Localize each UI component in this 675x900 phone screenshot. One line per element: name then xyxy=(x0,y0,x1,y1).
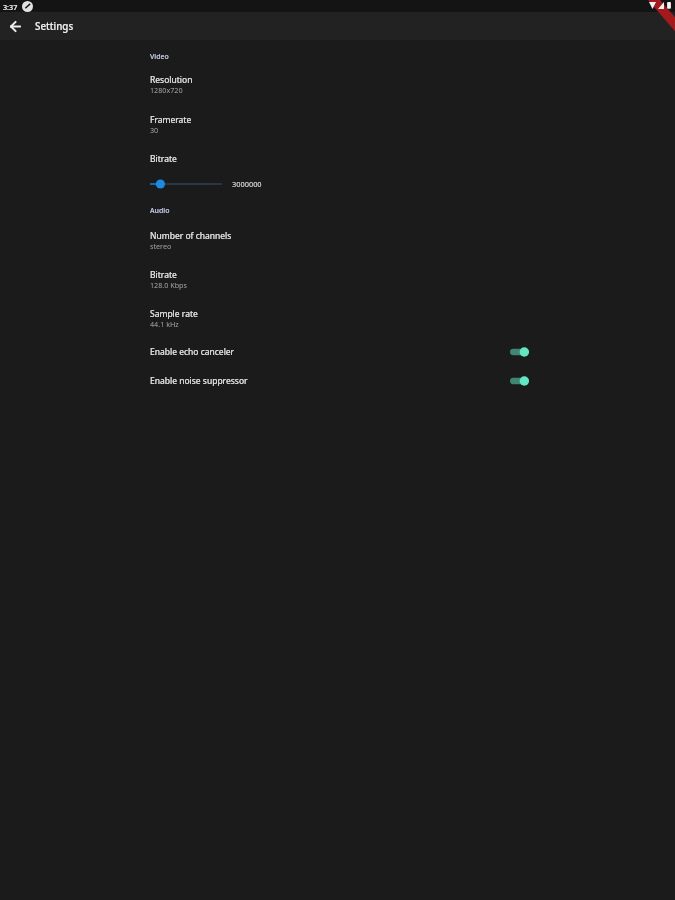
staticText: 128.0 Kbps xyxy=(150,280,187,290)
button[interactable]: Bitrate xyxy=(144,150,675,168)
staticText: 3:37 xyxy=(3,2,18,12)
button[interactable]: Enable noise suppressor xyxy=(0,370,675,392)
staticText: Audio xyxy=(150,206,170,216)
button[interactable]: Sample rate xyxy=(144,305,675,333)
staticText: 30 xyxy=(150,125,159,135)
staticText: Number of channels xyxy=(150,230,232,242)
button[interactable]: Resolution xyxy=(144,71,675,99)
button[interactable]: Enable echo canceler xyxy=(0,341,675,363)
staticText: Enable noise suppressor xyxy=(150,375,248,387)
staticText: Sample rate xyxy=(150,308,198,320)
button[interactable]: Framerate xyxy=(144,111,675,139)
staticText: Bitrate xyxy=(150,153,177,165)
staticText: Bitrate xyxy=(150,269,177,281)
staticText: 1280x720 xyxy=(150,85,183,95)
staticText: 44.1 kHz xyxy=(150,319,179,329)
button[interactable]: Navigate up xyxy=(3,14,27,38)
staticText: stereo xyxy=(150,241,172,251)
staticText: Framerate xyxy=(150,114,192,126)
staticText: Video xyxy=(150,52,169,62)
button[interactable]: Bitrate xyxy=(144,266,675,294)
button[interactable]: Bitrate slider xyxy=(144,173,230,195)
button[interactable]: Number of channels xyxy=(144,227,675,255)
staticText: Settings xyxy=(35,20,74,33)
staticText: Enable echo canceler xyxy=(150,346,235,358)
staticText: 3000000 xyxy=(232,179,262,189)
staticText: Resolution xyxy=(150,74,193,86)
